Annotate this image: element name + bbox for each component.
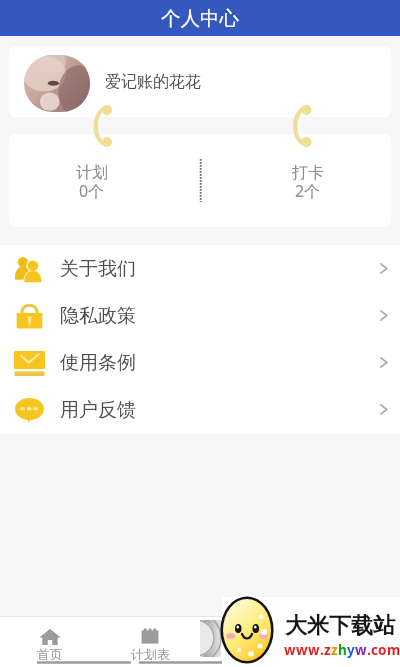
staticText: 2个: [295, 180, 321, 202]
button[interactable]: 计划: [43, 154, 140, 206]
staticText: y: [347, 641, 355, 659]
staticText: 大米下载站: [285, 612, 395, 640]
staticText: z: [331, 641, 338, 659]
staticText: 个人中心: [161, 6, 239, 31]
button[interactable]: 计划表: [100, 616, 200, 667]
staticText: w: [284, 641, 296, 659]
staticText: o: [378, 641, 387, 659]
staticText: 关于我们: [60, 257, 136, 281]
staticText: z: [324, 641, 331, 659]
button[interactable]: 我的: [300, 616, 400, 667]
staticText: 隐私政策: [60, 304, 136, 328]
staticText: .: [320, 641, 324, 659]
staticText: w: [308, 641, 320, 659]
staticText: .: [367, 641, 371, 659]
staticText: 我的: [337, 646, 363, 660]
button[interactable]: 隐私政策: [0, 292, 400, 339]
staticText: 计划表: [131, 646, 170, 660]
staticText: w: [355, 641, 367, 659]
button[interactable]: 爱记账的花花: [9, 46, 391, 117]
staticText: 首页: [37, 646, 63, 660]
button[interactable]: 使用条例: [0, 339, 400, 386]
staticText: 打卡: [292, 163, 324, 183]
staticText: 统计: [237, 646, 263, 660]
staticText: 使用条例: [60, 351, 136, 375]
button[interactable]: 用户反馈: [0, 386, 400, 433]
staticText: c: [371, 641, 378, 659]
staticText: 0个: [79, 180, 105, 202]
staticText: 计划: [76, 163, 108, 183]
button[interactable]: 打卡: [259, 154, 356, 206]
staticText: 用户反馈: [60, 398, 136, 422]
button[interactable]: 统计: [200, 616, 300, 667]
staticText: m: [387, 641, 400, 659]
staticText: h: [338, 641, 347, 659]
staticText: 爱记账的花花: [105, 72, 201, 92]
button[interactable]: 关于我们: [0, 245, 400, 292]
staticText: w: [296, 641, 308, 659]
button[interactable]: 首页: [0, 616, 100, 667]
